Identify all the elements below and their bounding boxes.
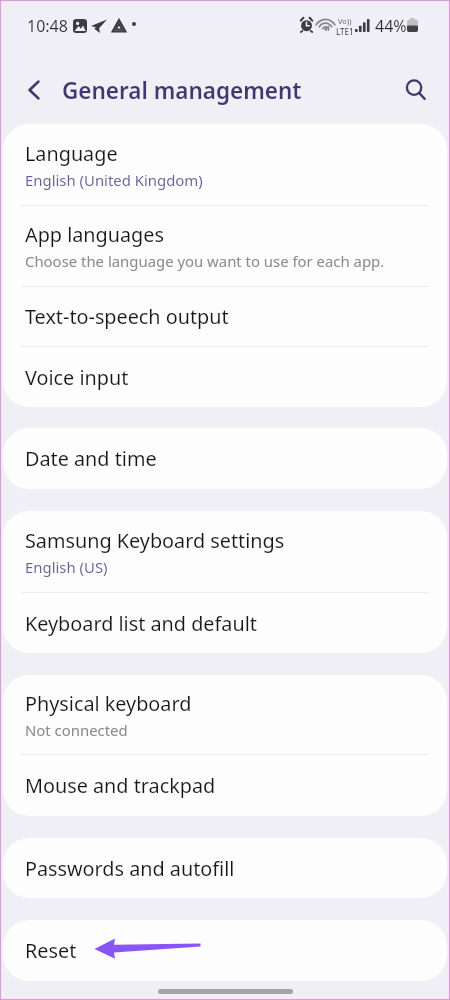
staticText: App languages: [25, 221, 164, 248]
staticText: English (US): [25, 557, 108, 577]
button[interactable]: Reset: [3, 920, 447, 981]
staticText: LTE1: [336, 26, 354, 37]
staticText: Vo)): [338, 16, 352, 26]
button[interactable]: Keyboard list and default: [3, 593, 447, 653]
button[interactable]: Navigate up: [12, 68, 56, 112]
staticText: Language: [25, 140, 118, 167]
staticText: Mouse and trackpad: [25, 772, 216, 799]
button[interactable]: Physical keyboard: [3, 675, 447, 754]
button[interactable]: Date and time: [3, 428, 447, 489]
staticText: Choose the language you want to use for …: [25, 251, 385, 271]
button[interactable]: Samsung Keyboard settings: [3, 511, 447, 592]
staticText: Not connected: [25, 720, 128, 740]
button[interactable]: App languages: [3, 206, 447, 286]
button[interactable]: Text-to-speech output: [3, 287, 447, 346]
staticText: Reset: [25, 937, 77, 964]
button[interactable]: Search: [392, 66, 440, 114]
button[interactable]: Mouse and trackpad: [3, 755, 447, 816]
button[interactable]: Language: [3, 124, 447, 205]
button[interactable]: Passwords and autofill: [3, 838, 447, 898]
button[interactable]: Voice input: [3, 347, 447, 407]
staticText: Voice input: [25, 364, 129, 391]
staticText: English (United Kingdom): [25, 170, 203, 190]
staticText: 10:48: [27, 15, 68, 37]
staticText: General management: [62, 75, 302, 106]
staticText: 44%: [375, 15, 407, 37]
staticText: Keyboard list and default: [25, 610, 257, 637]
staticText: Samsung Keyboard settings: [25, 527, 285, 554]
staticText: Text-to-speech output: [25, 303, 229, 330]
staticText: Passwords and autofill: [25, 855, 235, 882]
staticText: Date and time: [25, 445, 157, 472]
staticText: Physical keyboard: [25, 690, 192, 717]
